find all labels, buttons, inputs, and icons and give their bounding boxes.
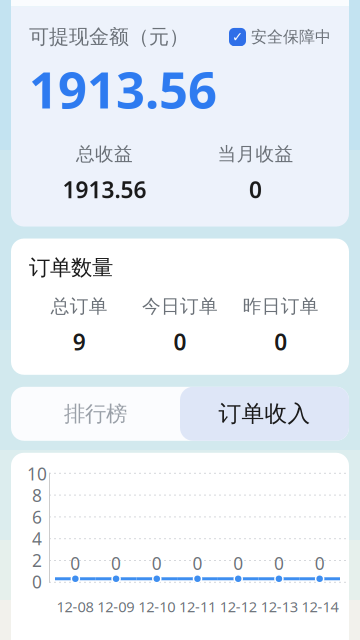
staticText: 2 xyxy=(32,549,42,572)
staticText: 1913.56 xyxy=(29,55,217,122)
staticText: 0 xyxy=(315,552,325,575)
staticText: 排行榜 xyxy=(64,401,127,427)
staticText: 可提现金额（元） xyxy=(29,25,189,49)
button[interactable]: 排行榜 xyxy=(11,387,180,441)
staticText: 1913.56 xyxy=(62,174,146,204)
staticText: 今日订单 xyxy=(142,295,218,318)
staticText: 订单数量 xyxy=(29,254,113,281)
staticText: ✓ xyxy=(232,29,243,44)
staticText: 昨日订单 xyxy=(243,295,319,318)
staticText: 0 xyxy=(152,552,162,575)
staticText: 订单收入 xyxy=(218,400,310,428)
staticText: 12-12 xyxy=(220,597,257,616)
staticText: 0 xyxy=(70,552,80,575)
staticText: 0 xyxy=(192,552,202,575)
staticText: 4 xyxy=(32,527,42,550)
staticText: 0 xyxy=(32,570,42,593)
staticText: 9 xyxy=(73,327,86,357)
staticText: 12-11 xyxy=(179,597,216,616)
staticText: 总订单 xyxy=(51,295,108,318)
staticText: 0 xyxy=(173,327,186,357)
staticText: 0 xyxy=(233,552,243,575)
staticText: 10 xyxy=(27,462,47,485)
button[interactable]: 订单收入 xyxy=(180,387,349,441)
staticText: 12-14 xyxy=(302,597,339,616)
staticText: 12-08 xyxy=(56,597,93,616)
staticText: 12-09 xyxy=(97,597,134,616)
staticText: 8 xyxy=(32,484,42,507)
staticText: 6 xyxy=(32,505,42,528)
staticText: 0 xyxy=(274,327,287,357)
staticText: 总收益 xyxy=(76,142,133,165)
staticText: 安全保障中 xyxy=(251,27,331,47)
staticText: 0 xyxy=(274,552,284,575)
staticText: 12-10 xyxy=(138,597,175,616)
staticText: 当月收益 xyxy=(217,142,293,165)
staticText: 0 xyxy=(249,174,262,204)
staticText: 0 xyxy=(111,552,121,575)
staticText: 12-13 xyxy=(261,597,298,616)
